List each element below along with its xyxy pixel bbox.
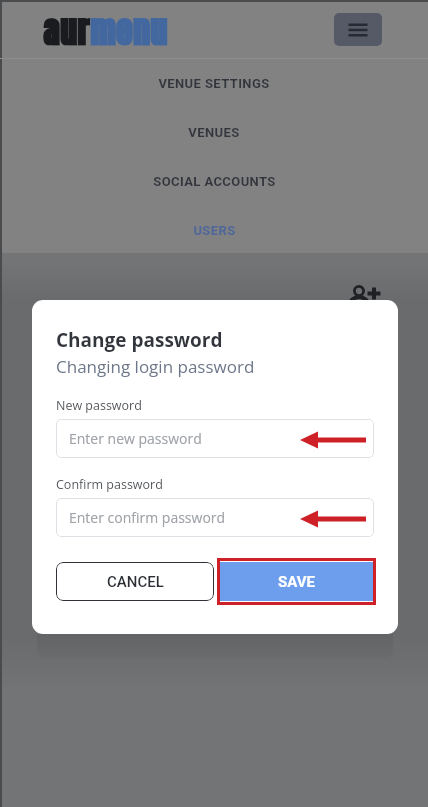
button[interactable]: SAVE	[220, 562, 373, 601]
button[interactable]: aur	[43, 6, 168, 56]
staticText: aur	[43, 6, 90, 56]
staticText: Confirm password	[56, 476, 163, 493]
staticText: Enter new password	[69, 429, 202, 448]
button[interactable]: CANCEL	[56, 562, 214, 601]
staticText: VENUES	[188, 125, 240, 140]
staticText: VENUE SETTINGS	[158, 76, 270, 91]
button[interactable]: VENUES	[0, 108, 428, 157]
button[interactable]: SOCIAL ACCOUNTS	[0, 157, 428, 206]
staticText: New password	[56, 397, 142, 414]
button[interactable]: USERS	[0, 206, 428, 255]
button[interactable]: Menu	[334, 13, 382, 46]
staticText: SOCIAL ACCOUNTS	[153, 174, 276, 189]
button[interactable]: Enter new password	[56, 419, 374, 458]
staticText: Changing login password	[56, 355, 255, 378]
staticText: CANCEL	[107, 573, 164, 591]
staticText: USERS	[193, 223, 236, 238]
staticText: SAVE	[278, 573, 315, 591]
staticText: menu	[90, 6, 168, 56]
staticText: Enter confirm password	[69, 508, 226, 527]
staticText: Change password	[56, 327, 223, 353]
button[interactable]: Add user	[349, 280, 383, 304]
button[interactable]: Enter confirm password	[56, 498, 374, 537]
button[interactable]: VENUE SETTINGS	[0, 59, 428, 108]
